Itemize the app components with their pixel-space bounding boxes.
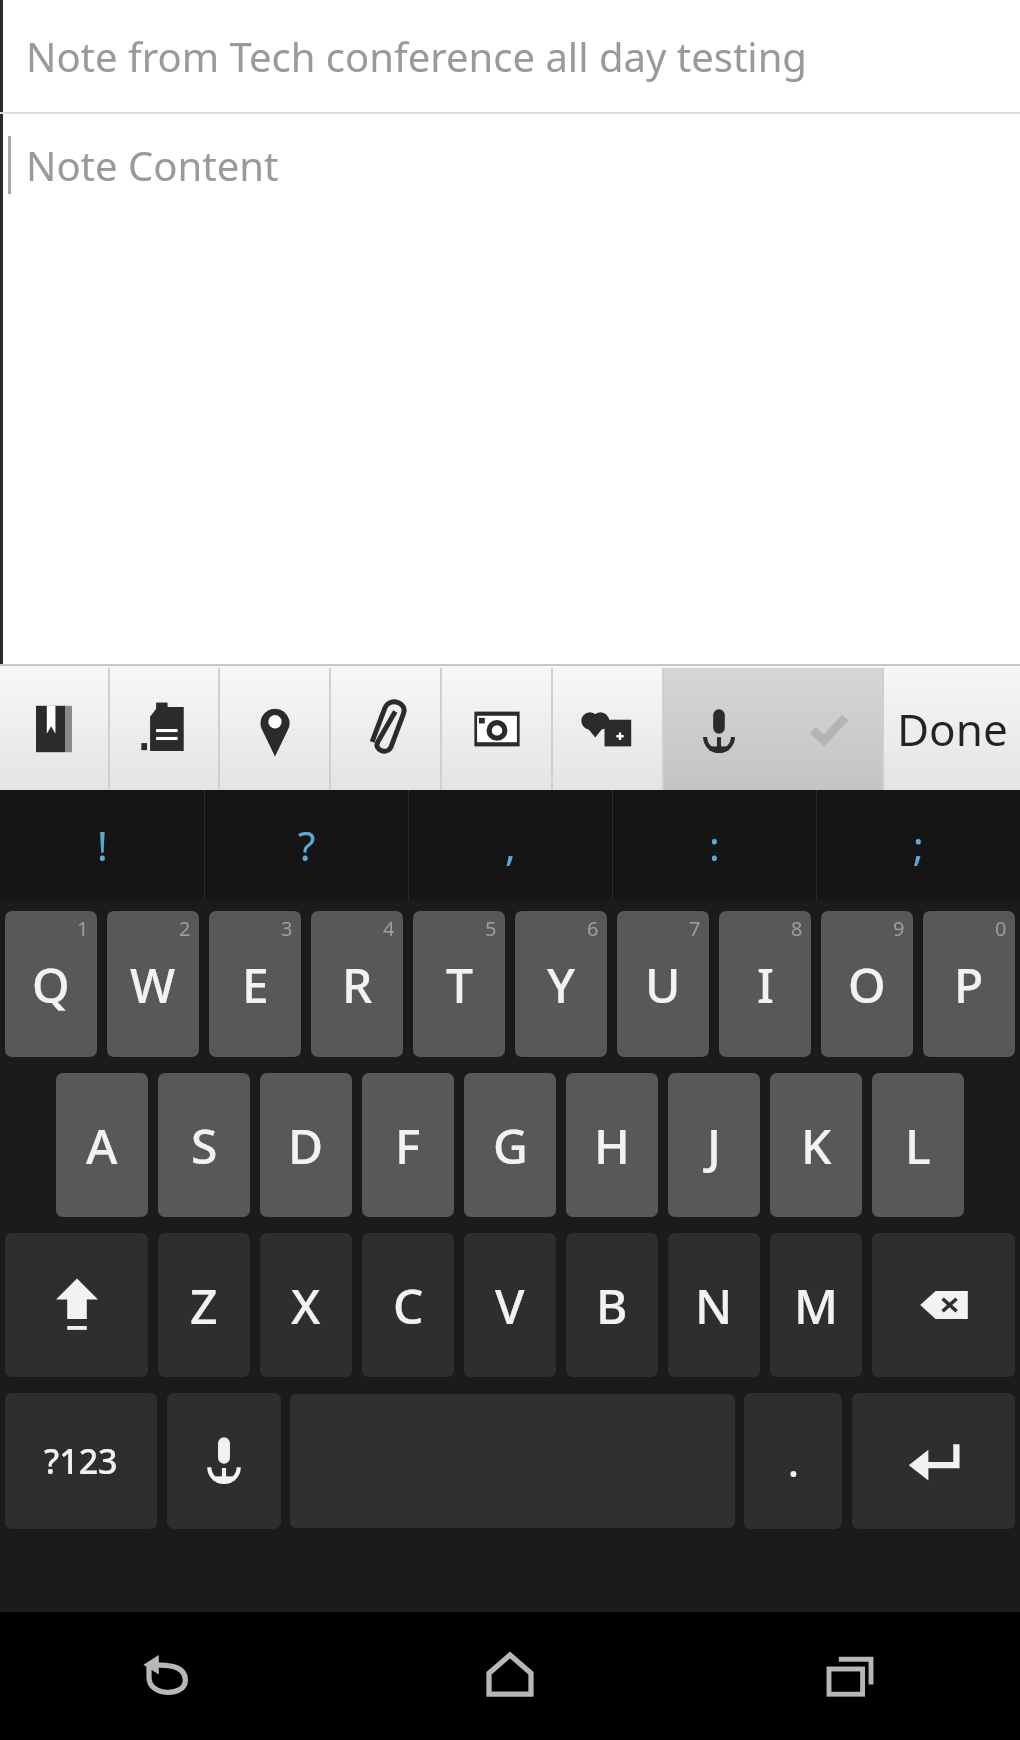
staticText: W xyxy=(130,952,176,1017)
button[interactable]: X xyxy=(260,1233,352,1377)
button[interactable]: . xyxy=(744,1393,842,1529)
button[interactable]: B xyxy=(566,1233,658,1377)
staticText: F xyxy=(395,1113,421,1178)
staticText: X xyxy=(291,1273,321,1338)
staticText: K xyxy=(801,1113,832,1178)
staticText: 3 xyxy=(281,915,293,942)
button[interactable]: Bookmark xyxy=(0,668,108,790)
staticText: 1 xyxy=(77,915,89,942)
button[interactable]: ! xyxy=(0,790,204,900)
button[interactable]: N xyxy=(668,1233,760,1377)
button[interactable]: Attach file xyxy=(331,668,440,790)
button[interactable]: J xyxy=(668,1073,760,1217)
staticText: ? xyxy=(298,818,316,872)
staticText: H xyxy=(594,1113,630,1178)
button[interactable]: M xyxy=(770,1233,862,1377)
button[interactable]: Home xyxy=(340,1612,680,1740)
staticText: 7 xyxy=(689,915,701,942)
button[interactable]: Q xyxy=(5,911,97,1057)
button[interactable]: , xyxy=(409,790,612,900)
button[interactable]: L xyxy=(872,1073,964,1217)
button[interactable]: ; xyxy=(817,790,1020,900)
button[interactable]: Recents xyxy=(680,1612,1020,1740)
staticText: ; xyxy=(913,818,924,872)
staticText: 9 xyxy=(893,915,905,942)
button[interactable]: Note Content xyxy=(0,114,1020,664)
button[interactable]: : xyxy=(613,790,816,900)
staticText: . xyxy=(788,1434,799,1488)
staticText: 8 xyxy=(791,915,803,942)
button[interactable]: Back xyxy=(0,1612,340,1740)
staticText: O xyxy=(848,952,886,1017)
button[interactable]: E xyxy=(209,911,301,1057)
button[interactable]: Note from Tech conference all day testin… xyxy=(0,0,1020,112)
button[interactable]: G xyxy=(464,1073,556,1217)
staticText: A xyxy=(86,1113,118,1178)
button[interactable]: I xyxy=(719,911,811,1057)
staticText: J xyxy=(707,1113,721,1178)
button[interactable]: T xyxy=(413,911,505,1057)
staticText: N xyxy=(695,1273,733,1338)
staticText: 6 xyxy=(587,915,599,942)
staticText: 5 xyxy=(485,915,497,942)
staticText: R xyxy=(342,952,373,1017)
button[interactable]: W xyxy=(107,911,199,1057)
button[interactable]: O xyxy=(821,911,913,1057)
staticText: V xyxy=(495,1273,525,1338)
button[interactable]: Shift xyxy=(5,1233,148,1377)
staticText: E xyxy=(242,952,269,1017)
staticText: Z xyxy=(190,1273,218,1338)
staticText: B xyxy=(596,1273,628,1338)
button[interactable]: Confirm xyxy=(773,668,882,790)
button[interactable]: C xyxy=(362,1233,454,1377)
staticText: 2 xyxy=(179,915,191,942)
button[interactable]: Voice input xyxy=(167,1393,281,1529)
staticText: I xyxy=(757,952,774,1017)
button[interactable]: Y xyxy=(515,911,607,1057)
staticText: ! xyxy=(97,818,108,872)
button[interactable]: R xyxy=(311,911,403,1057)
button[interactable]: Done xyxy=(884,668,1020,790)
staticText: , xyxy=(505,818,516,872)
button[interactable]: S xyxy=(158,1073,250,1217)
staticText: S xyxy=(191,1113,218,1178)
staticText: Note Content xyxy=(26,138,279,192)
staticText: C xyxy=(393,1273,424,1338)
button[interactable]: Tag xyxy=(110,668,218,790)
staticText: L xyxy=(905,1113,931,1178)
staticText: G xyxy=(493,1113,528,1178)
button[interactable]: Z xyxy=(158,1233,250,1377)
button[interactable]: A xyxy=(56,1073,148,1217)
button[interactable]: F xyxy=(362,1073,454,1217)
button[interactable]: Enter xyxy=(852,1393,1015,1529)
button[interactable]: Backspace xyxy=(872,1233,1015,1377)
staticText: D xyxy=(288,1113,324,1178)
button[interactable]: Add contact xyxy=(553,668,662,790)
button[interactable]: Location xyxy=(220,668,329,790)
staticText: Y xyxy=(547,952,576,1017)
staticText: P xyxy=(954,952,984,1017)
button[interactable]: P xyxy=(923,911,1015,1057)
button[interactable]: Camera xyxy=(442,668,551,790)
staticText: Q xyxy=(32,952,70,1017)
button[interactable]: H xyxy=(566,1073,658,1217)
staticText: M xyxy=(794,1273,839,1338)
staticText: : xyxy=(709,818,720,872)
button[interactable]: ? xyxy=(205,790,408,900)
staticText: Done xyxy=(897,699,1008,759)
staticText: 0 xyxy=(995,915,1007,942)
button[interactable]: V xyxy=(464,1233,556,1377)
button[interactable]: D xyxy=(260,1073,352,1217)
staticText: Note from Tech conference all day testin… xyxy=(26,29,807,83)
staticText: U xyxy=(645,952,681,1017)
staticText: ?123 xyxy=(44,1438,118,1484)
button[interactable]: ?123 xyxy=(5,1393,157,1529)
button[interactable]: Voice note xyxy=(664,668,773,790)
staticText: T xyxy=(446,952,473,1017)
staticText: 4 xyxy=(383,915,395,942)
button[interactable]: U xyxy=(617,911,709,1057)
button[interactable]: K xyxy=(770,1073,862,1217)
